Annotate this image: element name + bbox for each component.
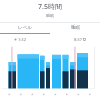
button[interactable]: 睡眠 <box>50 23 100 33</box>
staticText: 睡眠 <box>71 25 80 31</box>
staticText: レベル <box>18 25 32 31</box>
staticText: 7.5時間 <box>0 2 100 12</box>
staticText: 8:37 <box>74 37 82 42</box>
staticText: 1:32 <box>18 37 26 42</box>
button[interactable]: レベル <box>0 23 50 33</box>
staticText: 睡眠 <box>0 13 100 18</box>
